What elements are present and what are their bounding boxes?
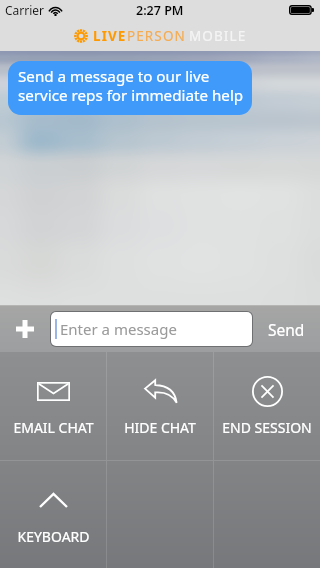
staticText: LIVE	[93, 27, 127, 45]
button[interactable]: Send	[253, 306, 320, 352]
staticText: MOBILE	[189, 27, 247, 45]
staticText: EMAIL CHAT	[13, 418, 94, 437]
staticText: Send	[268, 319, 305, 340]
button[interactable]: END SESSION	[214, 352, 320, 460]
button[interactable]: Enter a message	[51, 312, 252, 346]
staticText: END SESSION	[222, 418, 312, 437]
staticText: 2:27 PM	[136, 2, 184, 19]
button[interactable]: Send a message to our live service reps …	[8, 61, 252, 115]
staticText: Carrier	[5, 2, 45, 18]
staticText: PERSON	[127, 27, 186, 45]
staticText: KEYBOARD	[17, 527, 90, 546]
button[interactable]: Add attachment	[0, 306, 50, 352]
button[interactable]: HIDE CHAT	[107, 352, 213, 460]
staticText: Send a message to our live service reps …	[18, 66, 246, 105]
staticText: Enter a message	[60, 319, 177, 339]
button[interactable]: KEYBOARD	[0, 461, 106, 568]
button[interactable]: EMAIL CHAT	[0, 352, 106, 460]
staticText: HIDE CHAT	[124, 418, 196, 437]
